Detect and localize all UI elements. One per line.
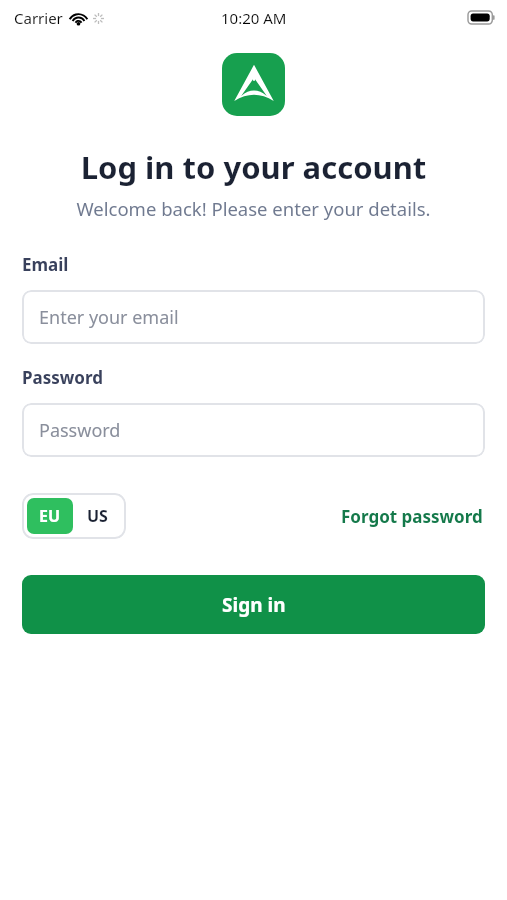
staticText: Sign in [222, 592, 286, 618]
staticText: Password [22, 366, 103, 389]
button[interactable]: Forgot password [339, 499, 485, 534]
staticText: Forgot password [341, 505, 483, 528]
staticText: 10:20 AM [221, 8, 287, 28]
button[interactable]: EU [27, 498, 73, 534]
staticText: Welcome back! Please enter your details. [0, 196, 507, 221]
staticText: Enter your email [39, 305, 179, 330]
button[interactable]: Password [22, 403, 485, 457]
staticText: EU [39, 505, 61, 527]
staticText: Carrier [14, 8, 63, 28]
staticText: Log in to your account [0, 146, 507, 188]
other: App logo [222, 53, 285, 116]
staticText: Password [39, 418, 121, 443]
staticText: US [87, 505, 108, 527]
button[interactable]: Sign in [22, 575, 485, 634]
button[interactable]: Enter your email [22, 290, 485, 344]
staticText: Email [22, 253, 69, 276]
button[interactable]: US [73, 498, 121, 534]
